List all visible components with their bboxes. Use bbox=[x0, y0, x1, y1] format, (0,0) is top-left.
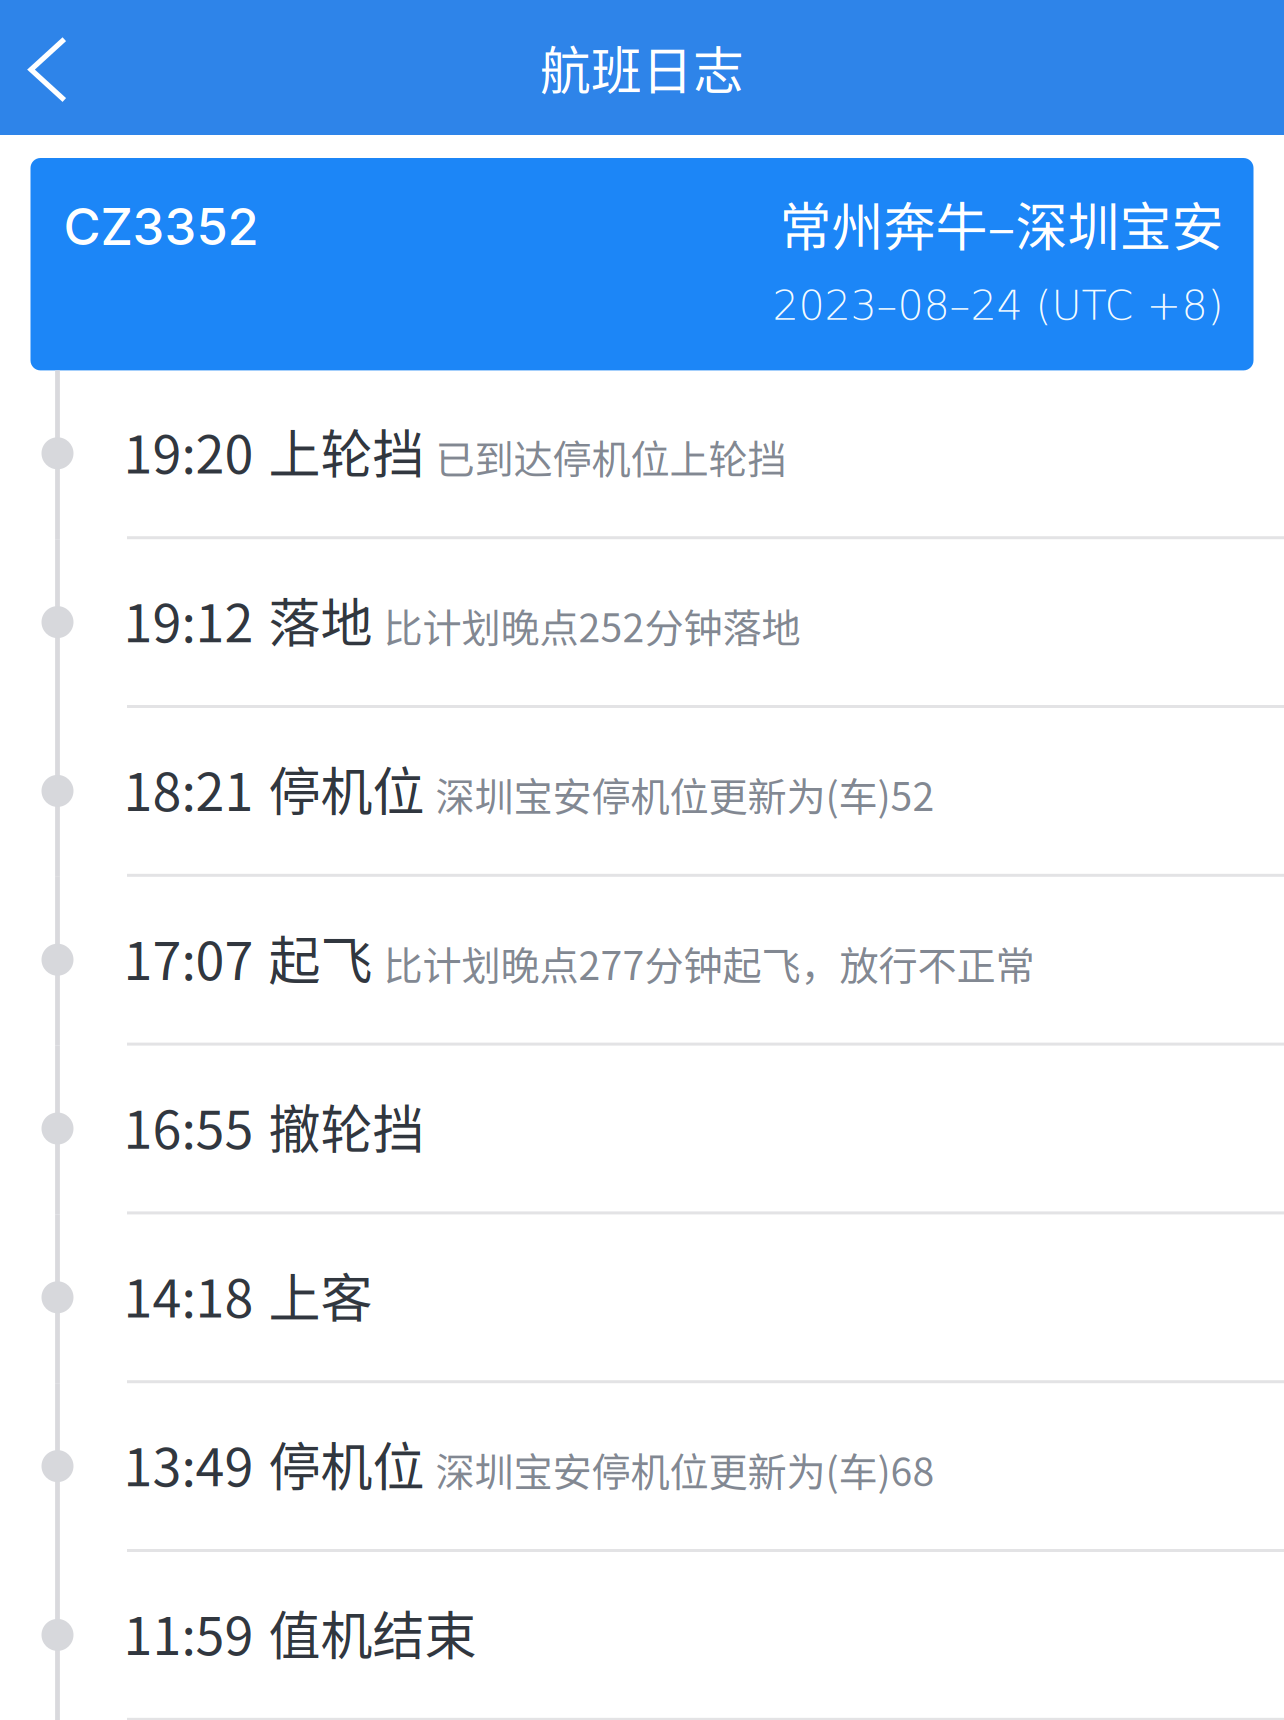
staticText: 14:18 上客 bbox=[123, 1257, 372, 1332]
staticText: 19:12 落地 bbox=[123, 582, 372, 657]
button[interactable]: 18:21 停机位 bbox=[0, 708, 1284, 877]
staticText: 18:21 停机位 bbox=[123, 751, 424, 826]
button[interactable]: 17:07 起飞 bbox=[0, 877, 1284, 1046]
button[interactable]: 11:59 值机结束 bbox=[0, 1552, 1284, 1720]
staticText: CZ3352 bbox=[63, 196, 258, 257]
button[interactable]: 16:55 撤轮挡 bbox=[0, 1046, 1284, 1214]
button[interactable]: 14:18 上客 bbox=[0, 1214, 1284, 1383]
staticText: 11:59 值机结束 bbox=[123, 1595, 476, 1670]
button[interactable]: 19:12 落地 bbox=[0, 539, 1284, 708]
button[interactable]: 19:20 上轮挡 bbox=[0, 370, 1284, 539]
staticText: 深圳宝安停机位更新为(车)52 bbox=[424, 766, 934, 822]
button[interactable]: CZ3352 bbox=[0, 135, 1284, 370]
button[interactable]: Back bbox=[0, 0, 136, 135]
staticText: 常州奔牛–深圳宝安 bbox=[779, 186, 1223, 261]
staticText: 深圳宝安停机位更新为(车)68 bbox=[424, 1441, 934, 1498]
staticText: 17:07 起飞 bbox=[123, 920, 372, 995]
staticText: 比计划晚点252分钟落地 bbox=[372, 597, 800, 654]
staticText: 13:49 停机位 bbox=[123, 1426, 424, 1501]
staticText: 16:55 撤轮挡 bbox=[123, 1088, 424, 1164]
staticText: 已到达停机位上轮挡 bbox=[424, 428, 786, 485]
staticText: 19:20 上轮挡 bbox=[123, 413, 424, 488]
button[interactable]: 13:49 停机位 bbox=[0, 1383, 1284, 1552]
staticText: 航班日志 bbox=[540, 31, 744, 104]
staticText: 比计划晚点277分钟起飞，放行不正常 bbox=[372, 934, 1034, 991]
staticText: 2023–08–24 (UTC +8) bbox=[772, 281, 1223, 329]
